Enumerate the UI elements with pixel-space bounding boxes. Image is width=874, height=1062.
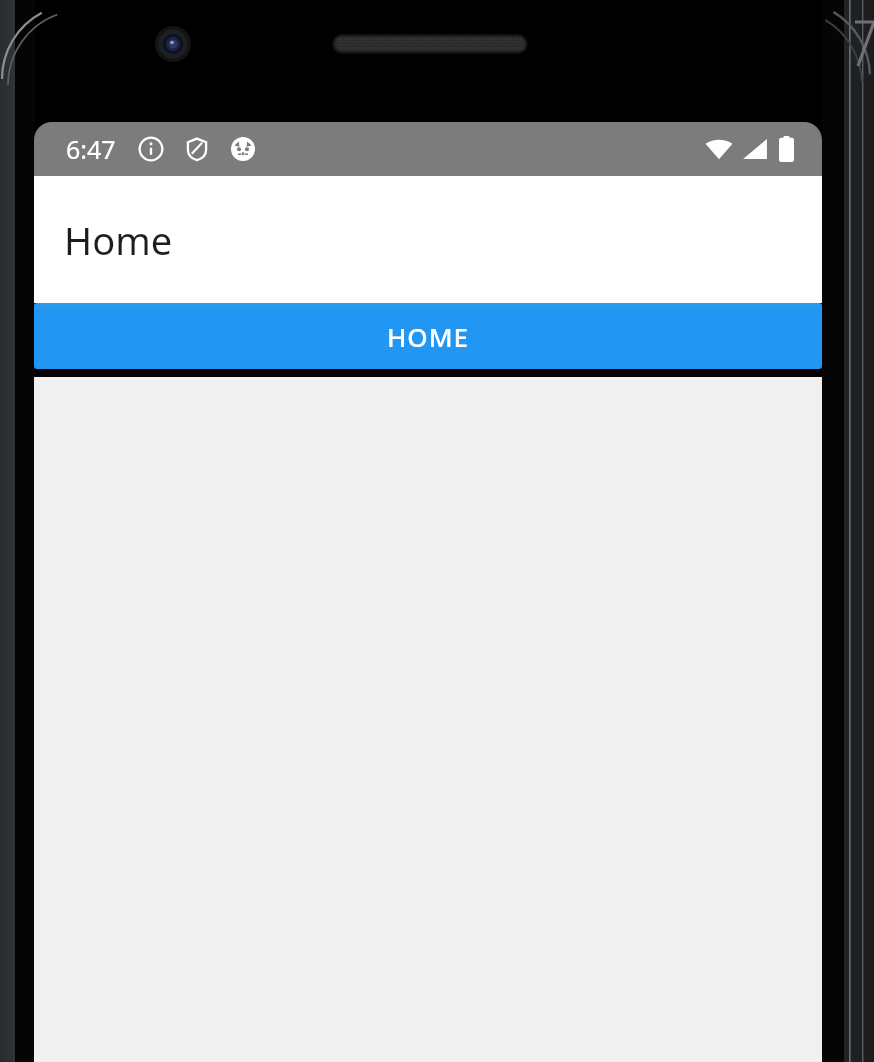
staticText: Home (64, 214, 173, 266)
staticText: HOME (387, 319, 469, 354)
staticText: 6:47 (66, 132, 116, 166)
button[interactable]: HOME (34, 303, 822, 369)
